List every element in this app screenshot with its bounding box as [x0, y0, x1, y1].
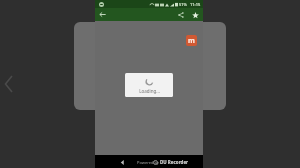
- other: Scroll left: [4, 76, 14, 92]
- button[interactable]: Favorite: [190, 10, 200, 20]
- staticText: m: [188, 36, 195, 46]
- button[interactable]: Previous page: [74, 22, 118, 110]
- button[interactable]: App logo: [186, 35, 197, 46]
- staticText: Powered by: [137, 160, 160, 165]
- button[interactable]: Home: [150, 157, 160, 167]
- staticText: 11:15: [190, 2, 201, 7]
- button[interactable]: Back: [97, 9, 108, 20]
- button[interactable]: Share: [176, 10, 186, 20]
- staticText: 51%: [179, 2, 187, 7]
- staticText: Loading...: [139, 88, 160, 94]
- button[interactable]: Next page: [182, 22, 226, 110]
- staticText: DU Recorder: [160, 159, 189, 165]
- button[interactable]: Back: [117, 157, 127, 167]
